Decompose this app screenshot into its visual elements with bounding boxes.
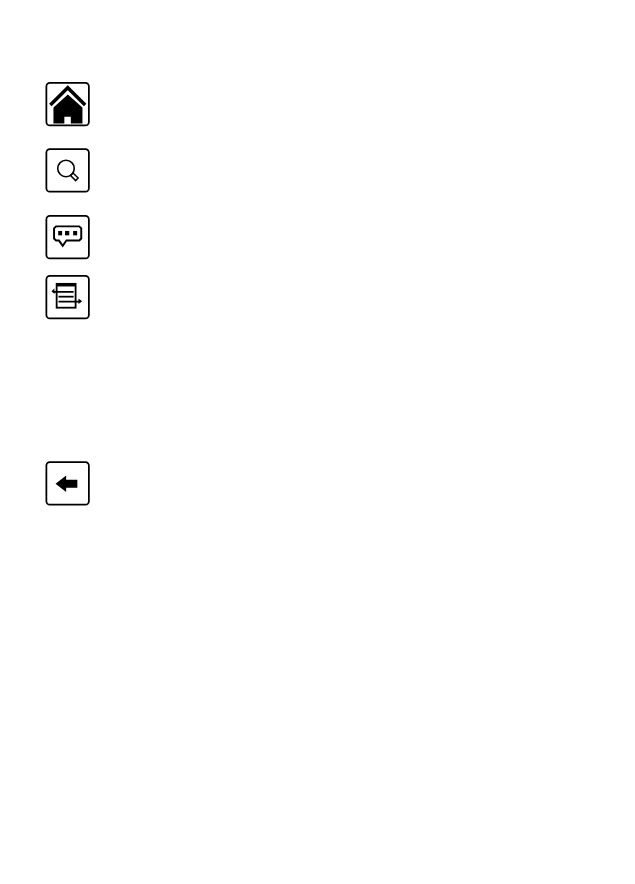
button[interactable]: Transfer xyxy=(46,275,90,319)
button[interactable]: Search xyxy=(46,148,90,192)
button[interactable]: Home xyxy=(46,82,90,126)
button[interactable]: Messages xyxy=(46,215,90,259)
button[interactable]: Back xyxy=(46,461,90,505)
